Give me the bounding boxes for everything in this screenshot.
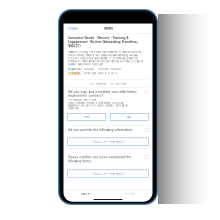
staticText: No [127,115,131,118]
staticText: Assigned Date: [67,68,82,70]
button[interactable]: Cancel [63,190,108,197]
staticText: 10/16/2024 · Due Date: 10/30/2024 [84,68,121,70]
button[interactable]: Submit [108,190,152,197]
staticText: Yes [84,115,89,118]
staticText: Close [67,26,77,30]
staticText: Tasks [103,26,113,30]
staticText: Please confirm you have completed the fo… [67,155,131,163]
staticText: Submit [125,192,135,195]
staticText: 0/1 Optional [110,82,126,85]
button[interactable]: No [110,113,148,121]
staticText: Select All That Apply [92,172,123,175]
staticText: Cancel [81,192,91,195]
staticText: 3/3 Required [90,82,107,85]
staticText: Current Step: Step 3 of 10 (30 %) [83,72,118,75]
staticText: Did you provide the following informatio… [67,128,133,132]
button[interactable]: Select All That Apply [67,170,148,177]
staticText: Did you sign and complete your offer let… [67,90,136,98]
staticText: Consumer Goods - Grocery - Training & En… [67,36,137,48]
button[interactable]: Close [67,25,85,32]
staticText: Thank for joining our team! We're excite… [67,51,143,66]
staticText: Select All That Apply [92,140,123,143]
staticText: This document confirm your Benefits Pack… [67,98,127,110]
button[interactable]: Select All That Apply [67,138,148,145]
button[interactable]: Yes [67,113,106,121]
staticText: In Progress [69,72,80,75]
